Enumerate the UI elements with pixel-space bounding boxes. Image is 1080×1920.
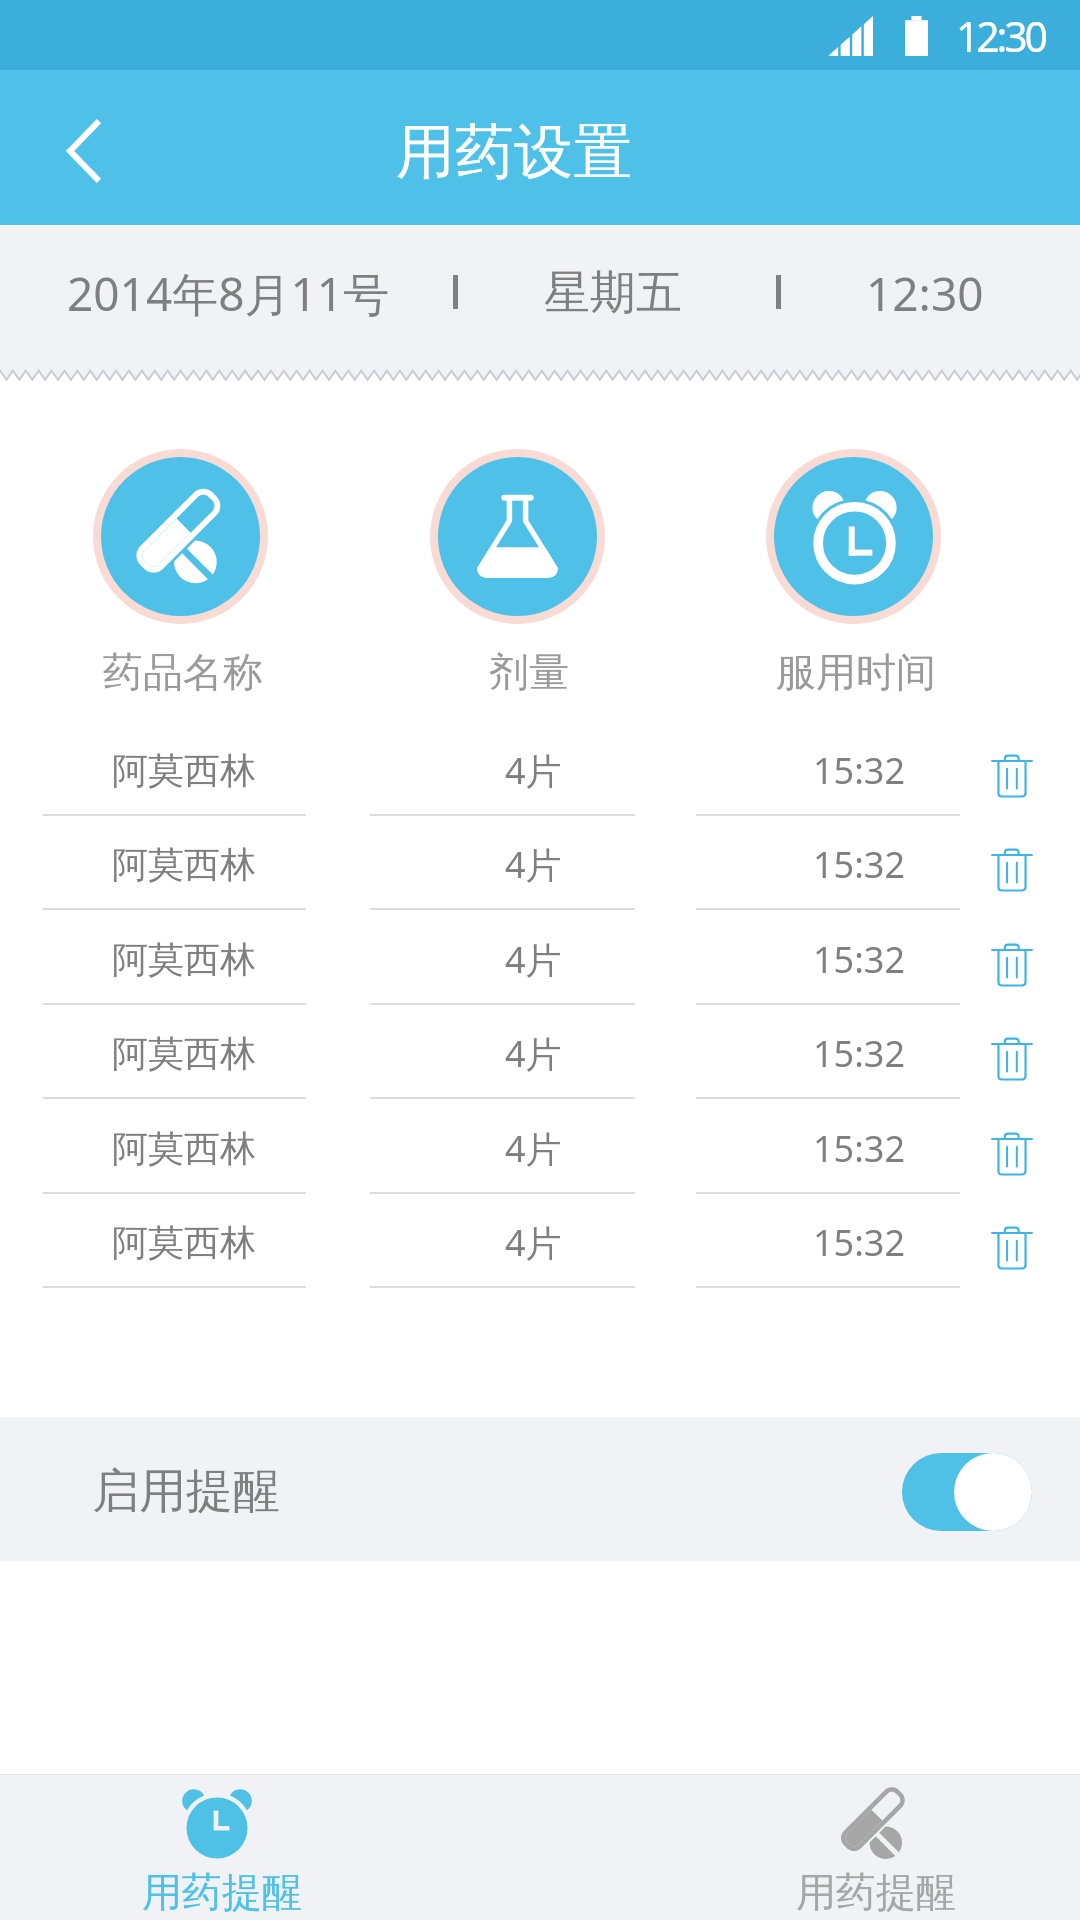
button[interactable]: 阿莫西林 <box>0 910 1080 1005</box>
staticText: 阿莫西林 <box>112 937 256 982</box>
staticText: 药品名称 <box>103 647 263 697</box>
staticText: 15:32 <box>813 1124 906 1173</box>
staticText: 4片 <box>505 935 562 984</box>
staticText: 星期五 <box>544 264 682 322</box>
button[interactable]: 阿莫西林 <box>0 721 1080 816</box>
staticText: 阿莫西林 <box>112 1126 256 1171</box>
button[interactable]: Back <box>20 85 146 211</box>
button[interactable]: Delete <box>991 849 1033 892</box>
staticText: 12:30 <box>866 262 984 325</box>
staticText: 4片 <box>505 840 562 889</box>
staticText: 启用提醒 <box>92 1462 280 1521</box>
button[interactable]: 用药提醒 <box>690 1774 1070 1920</box>
staticText: 4片 <box>505 1124 562 1173</box>
other: Signal strength <box>829 16 873 56</box>
staticText: 4片 <box>505 746 562 795</box>
button[interactable]: Delete <box>991 1227 1033 1270</box>
staticText: 服用时间 <box>776 647 936 697</box>
button[interactable]: Delete <box>991 944 1033 987</box>
staticText: 剂量 <box>489 647 569 697</box>
staticText: 阿莫西林 <box>112 1220 256 1265</box>
button[interactable]: Category <box>766 449 941 624</box>
staticText: 4片 <box>505 1029 562 1078</box>
button[interactable]: Category <box>430 449 605 624</box>
button[interactable]: Delete <box>991 1133 1033 1176</box>
staticText: 4片 <box>505 1218 562 1267</box>
button[interactable]: 阿莫西林 <box>0 1004 1080 1099</box>
button[interactable]: Enable reminder toggle <box>902 1453 1032 1531</box>
staticText: 用药提醒 <box>796 1867 956 1917</box>
staticText: 阿莫西林 <box>112 748 256 793</box>
staticText: 15:32 <box>813 1218 906 1267</box>
button[interactable]: Delete <box>991 755 1033 798</box>
staticText: 用药提醒 <box>142 1867 302 1917</box>
button[interactable]: Delete <box>991 1038 1033 1081</box>
staticText: 15:32 <box>813 840 906 889</box>
staticText: 用药设置 <box>396 115 632 189</box>
staticText: 阿莫西林 <box>112 842 256 887</box>
other: Battery <box>905 16 928 56</box>
button[interactable]: 阿莫西林 <box>0 1193 1080 1288</box>
staticText: 2014年8月11号 <box>67 262 390 325</box>
button[interactable]: 阿莫西林 <box>0 815 1080 910</box>
staticText: 12:30 <box>956 8 1045 64</box>
button[interactable]: Category <box>93 449 268 624</box>
staticText: 阿莫西林 <box>112 1031 256 1076</box>
staticText: 15:32 <box>813 746 906 795</box>
button[interactable]: 阿莫西林 <box>0 1099 1080 1194</box>
staticText: 15:32 <box>813 1029 906 1078</box>
button[interactable]: 用药提醒 <box>30 1774 410 1920</box>
staticText: 15:32 <box>813 935 906 984</box>
